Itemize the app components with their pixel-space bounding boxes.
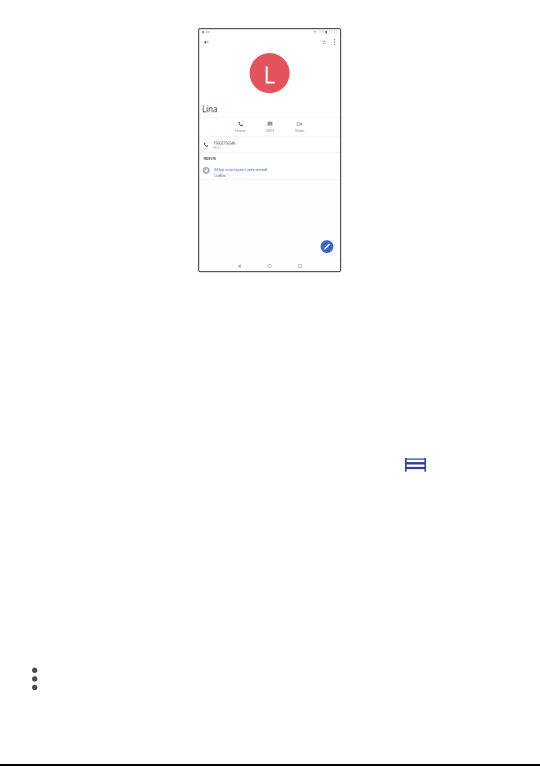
staticText: Mějte svou historii pohromadě bbox=[214, 167, 267, 172]
button[interactable]: Home bbox=[268, 260, 271, 272]
button[interactable]: Back bbox=[200, 36, 213, 49]
button[interactable]: More options bbox=[330, 36, 340, 49]
staticText: L bbox=[264, 59, 276, 90]
button[interactable]: Add to favourites bbox=[319, 36, 330, 49]
staticText: SMS bbox=[266, 128, 274, 133]
button[interactable]: Hovor bbox=[226, 118, 255, 137]
button[interactable]: Back bbox=[237, 260, 241, 272]
staticText: 77% bbox=[318, 30, 324, 34]
button[interactable]: SMS bbox=[255, 118, 285, 137]
button[interactable]: Recent apps bbox=[298, 260, 302, 272]
button[interactable]: Edit contact bbox=[321, 240, 333, 253]
button[interactable]: Mějte svou historii pohromadě bbox=[199, 164, 341, 179]
button[interactable]: Video bbox=[285, 118, 314, 137]
staticText: Hovor bbox=[235, 128, 246, 133]
staticText: NEDÁVNÉ bbox=[203, 157, 215, 160]
button[interactable]: 15602756546 bbox=[199, 137, 341, 152]
staticText: Lina bbox=[202, 104, 217, 114]
staticText: 16:35 bbox=[328, 30, 337, 34]
staticText: 15602756546 bbox=[213, 140, 235, 145]
staticText: Mobil bbox=[213, 146, 221, 149]
staticText: Video bbox=[295, 128, 304, 133]
staticText: Udělat bbox=[214, 173, 225, 178]
